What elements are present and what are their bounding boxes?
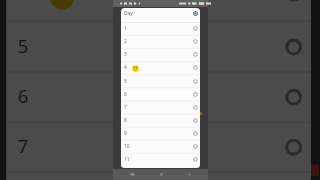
button[interactable]: 11	[121, 153, 200, 166]
button[interactable]: 7	[6, 122, 311, 172]
button[interactable]: 3	[121, 48, 200, 61]
staticText: Day	[124, 10, 133, 17]
staticText: 6	[18, 84, 29, 110]
staticText: 9	[124, 130, 127, 137]
button[interactable]: Day	[121, 8, 200, 22]
button[interactable]: 8	[121, 114, 200, 127]
staticText: 4	[124, 64, 127, 71]
staticText: 1	[124, 25, 127, 32]
button[interactable]: 8	[6, 172, 311, 180]
staticText: 7	[18, 134, 29, 161]
button[interactable]: 4	[6, 0, 311, 18]
button[interactable]: 5	[121, 75, 200, 88]
staticText: 3	[124, 51, 127, 58]
button[interactable]: Recents	[123, 169, 141, 180]
staticText: 2	[124, 38, 127, 45]
button[interactable]: 7	[121, 101, 200, 114]
staticText: 7	[124, 104, 127, 111]
staticText: 8	[124, 117, 127, 124]
button[interactable]: 5	[6, 22, 311, 72]
button[interactable]: 6	[121, 88, 200, 101]
button[interactable]: 6	[6, 72, 311, 122]
button[interactable]: 9	[121, 127, 200, 140]
button[interactable]: 2	[121, 35, 200, 48]
button[interactable]: 10	[121, 140, 200, 153]
staticText: 5	[124, 78, 127, 85]
staticText: 5	[18, 34, 29, 61]
button[interactable]: Home	[152, 169, 170, 180]
button[interactable]: Back	[180, 169, 198, 180]
button[interactable]: 1	[121, 22, 200, 35]
button[interactable]: 4	[121, 61, 200, 74]
staticText: 10	[124, 143, 130, 150]
staticText: 11	[124, 156, 130, 163]
staticText: 6	[124, 91, 127, 98]
